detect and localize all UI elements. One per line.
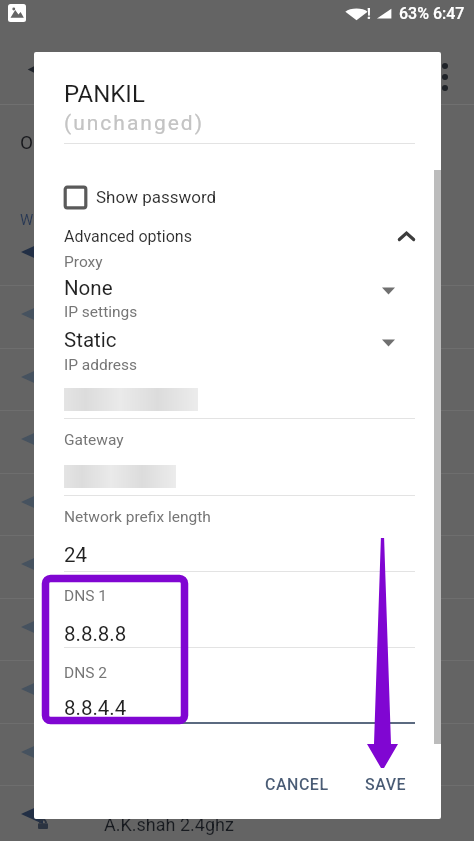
staticText: IP address: [64, 356, 138, 374]
staticText: !: [367, 6, 371, 22]
other: Dropdown: [382, 335, 395, 348]
staticText: 24: [64, 543, 88, 567]
staticText: Proxy: [64, 253, 103, 271]
staticText: 63% 6:47: [399, 4, 465, 23]
staticText: Gateway: [64, 431, 124, 449]
staticText: DNS 1: [64, 587, 107, 605]
staticText: DNS 2: [64, 664, 107, 682]
staticText: SAVE: [365, 775, 407, 794]
staticText: IP settings: [64, 303, 138, 321]
staticText: A.K.shah 2.4ghz: [104, 814, 234, 835]
button[interactable]: Show password: [63, 181, 217, 213]
other: Collapse: [398, 228, 415, 245]
staticText: CANCEL: [265, 775, 329, 794]
staticText: Network prefix length: [64, 508, 211, 526]
staticText: On: [20, 131, 44, 153]
button[interactable]: CANCEL: [253, 765, 341, 803]
button[interactable]: SAVE: [353, 765, 419, 803]
other: Dropdown: [382, 283, 395, 296]
staticText: 8.8.4.4: [64, 696, 127, 720]
staticText: PANKIL: [64, 80, 145, 108]
staticText: 8.8.8.8: [64, 622, 127, 646]
staticText: Show password: [96, 187, 217, 207]
other: More options: [442, 63, 448, 91]
other: Back: [25, 62, 40, 77]
button[interactable]: Advanced options: [64, 222, 415, 250]
staticText: Wi: [20, 211, 37, 229]
staticText: (unchanged): [64, 111, 205, 136]
staticText: Static: [64, 328, 117, 352]
staticText: None: [64, 276, 113, 300]
staticText: Advanced options: [64, 227, 192, 246]
